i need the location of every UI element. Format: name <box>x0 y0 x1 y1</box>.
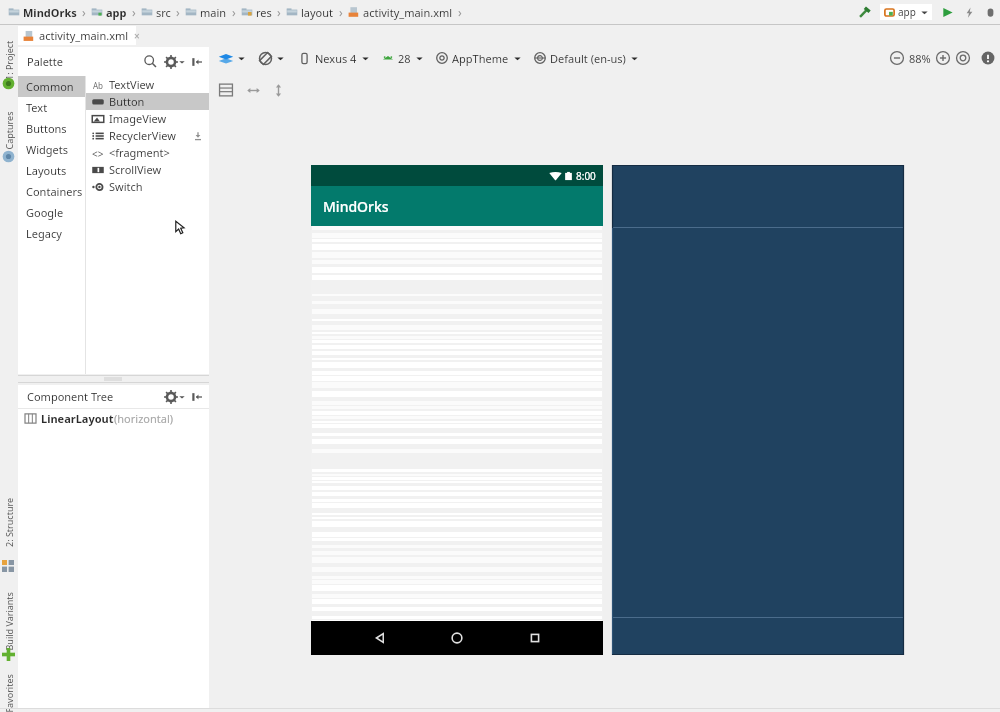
staticText: TextView <box>109 77 155 92</box>
button[interactable]: Build project <box>856 4 873 21</box>
staticText: 28 <box>398 51 411 66</box>
staticText: ScrollView <box>109 162 162 177</box>
staticText: src <box>156 5 171 20</box>
button[interactable]: main <box>184 4 240 20</box>
staticText: Component Tree <box>27 389 114 404</box>
button[interactable]: Select design surface <box>218 50 234 66</box>
staticText: 2: Structure <box>3 497 15 547</box>
staticText: Layouts <box>26 163 67 178</box>
staticText: Captures <box>2 110 14 149</box>
staticText: activity_main.xml <box>39 28 129 43</box>
staticText: 88% <box>909 51 931 66</box>
staticText: › <box>82 4 86 20</box>
staticText: Button <box>109 94 145 109</box>
staticText: <> <box>92 147 104 159</box>
button[interactable]: Switch <box>86 178 209 195</box>
button[interactable]: Default (en-us) <box>550 51 638 66</box>
staticText: layout <box>301 5 334 20</box>
button[interactable]: Widgets <box>18 139 85 160</box>
staticText: MindOrks <box>23 5 77 20</box>
button[interactable]: Layouts <box>18 160 85 181</box>
button[interactable]: Orientation for preview <box>258 51 273 66</box>
button[interactable]: Apply changes <box>963 6 976 19</box>
button[interactable]: Recents <box>526 629 544 647</box>
staticText: AppTheme <box>452 51 509 66</box>
staticText: Legacy <box>26 226 62 241</box>
staticText: › <box>277 4 281 20</box>
button[interactable]: Back <box>371 629 389 647</box>
staticText: app <box>898 5 916 19</box>
staticText: Palette <box>27 54 64 69</box>
staticText: › <box>458 4 462 20</box>
button[interactable]: Debug app <box>984 6 997 19</box>
button[interactable]: Run app <box>940 5 955 20</box>
button[interactable]: RecyclerView <box>86 127 209 144</box>
button[interactable]: activity_main.xml <box>347 4 463 20</box>
staticText: × <box>134 29 136 43</box>
button[interactable]: MindOrks <box>7 4 90 20</box>
button[interactable]: ScrollView <box>86 161 209 178</box>
staticText: Widgets <box>26 142 69 157</box>
button[interactable]: Horizontal guidelines <box>247 84 260 97</box>
staticText: › <box>339 4 343 20</box>
button[interactable]: Search palette <box>144 55 157 68</box>
button[interactable]: Nexus 4 <box>315 51 369 66</box>
button[interactable]: app <box>884 4 928 20</box>
staticText: app <box>106 5 127 20</box>
button[interactable]: Palette settings <box>165 56 177 68</box>
staticText: Containers <box>26 184 83 199</box>
staticText: LinearLayout <box>41 411 114 426</box>
staticText: Build Variants <box>2 591 14 650</box>
button[interactable]: Ab <box>86 76 209 93</box>
staticText: › <box>176 4 180 20</box>
button[interactable]: Zoom to fit screen <box>956 51 970 65</box>
staticText: activity_main.xml <box>363 5 453 20</box>
button[interactable]: ImageView <box>86 110 209 127</box>
staticText: Buttons <box>26 121 67 136</box>
staticText: Nexus 4 <box>315 51 357 66</box>
button[interactable]: Home <box>448 629 466 647</box>
button[interactable]: Text <box>18 97 85 118</box>
button[interactable]: app <box>90 4 140 20</box>
button[interactable]: res <box>240 4 285 20</box>
staticText: Ab <box>93 80 104 91</box>
button[interactable]: Hide component tree <box>191 391 203 403</box>
button[interactable]: Vertical guidelines <box>272 84 285 97</box>
staticText: <fragment> <box>109 145 170 160</box>
button[interactable]: Legacy <box>18 223 85 244</box>
staticText: Common <box>26 79 74 94</box>
button[interactable]: Common <box>18 76 85 97</box>
staticText: Google <box>26 205 64 220</box>
staticText: 8:00 <box>576 169 596 183</box>
staticText: MindOrks <box>323 197 389 216</box>
button[interactable]: layout <box>285 4 347 20</box>
staticText: ImageView <box>109 111 167 126</box>
button[interactable]: Buttons <box>18 118 85 139</box>
staticText: › <box>132 4 136 20</box>
button[interactable]: Show warnings and errors <box>981 51 995 65</box>
staticText: res <box>256 5 272 20</box>
button[interactable]: Containers <box>18 181 85 202</box>
button[interactable]: Hide palette <box>191 56 203 68</box>
button[interactable]: src <box>140 4 184 20</box>
button[interactable]: <> <box>86 144 209 161</box>
button[interactable]: LinearLayout <box>18 409 209 428</box>
button[interactable]: Zoom out <box>890 51 904 65</box>
button[interactable]: AppTheme <box>452 51 521 66</box>
staticText: Text <box>26 100 48 115</box>
button[interactable]: Zoom in <box>936 51 950 65</box>
staticText: 2: Favorites <box>2 673 14 712</box>
staticText: Default (en-us) <box>550 51 626 66</box>
button[interactable]: Toggle view options <box>219 83 233 97</box>
button[interactable]: activity_main.xml <box>18 26 136 45</box>
staticText: Switch <box>109 179 143 194</box>
staticText: › <box>232 4 236 20</box>
button[interactable]: Tree settings <box>165 391 177 403</box>
button[interactable]: Google <box>18 202 85 223</box>
staticText: RecyclerView <box>109 128 176 143</box>
staticText: (horizontal) <box>114 411 174 426</box>
staticText: main <box>200 5 227 20</box>
button[interactable]: Button <box>86 93 209 110</box>
staticText: 1: Project <box>3 40 15 80</box>
button[interactable]: 28 <box>398 51 423 66</box>
